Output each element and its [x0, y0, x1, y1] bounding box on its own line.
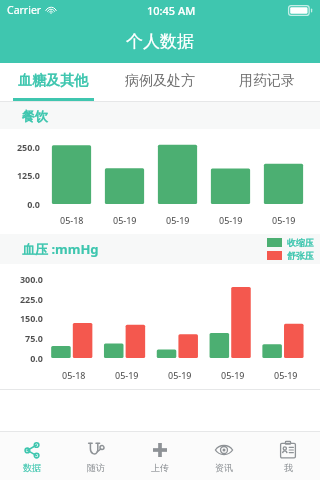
staticText: 125.0 — [16, 169, 40, 181]
staticText: 用药记录 — [239, 72, 295, 90]
staticText: 餐饮 — [22, 108, 48, 124]
staticText: 05-19 — [166, 214, 190, 226]
button[interactable]: 上传 — [128, 432, 192, 480]
staticText: 0.0 — [30, 352, 43, 364]
staticText: 05-19 — [168, 369, 192, 381]
button[interactable]: 用药记录 — [213, 63, 320, 98]
button[interactable]: 病例及处方 — [106, 63, 213, 98]
staticText: 10:45 AM — [147, 3, 196, 18]
staticText: 05-19 — [115, 369, 139, 381]
staticText: 收缩压 — [287, 237, 314, 248]
button[interactable]: 资讯 — [192, 432, 256, 480]
staticText: Carrier — [7, 3, 42, 17]
staticText: 225.0 — [19, 293, 43, 305]
staticText: 0.0 — [27, 198, 40, 210]
button[interactable]: 我 — [256, 432, 320, 480]
staticText: 我 — [284, 462, 293, 473]
staticText: 05-19 — [274, 369, 298, 381]
staticText: 个人数据 — [126, 31, 194, 52]
staticText: 数据 — [23, 462, 41, 473]
staticText: 150.0 — [19, 312, 43, 324]
button[interactable]: 数据 — [0, 432, 64, 480]
staticText: 上传 — [151, 462, 169, 473]
button[interactable]: 血糖及其他 — [0, 63, 106, 98]
staticText: 血糖及其他 — [18, 72, 88, 90]
button[interactable]: 随访 — [64, 432, 128, 480]
staticText: 75.0 — [25, 332, 43, 344]
staticText: 300.0 — [19, 273, 43, 285]
staticText: 05-19 — [113, 214, 137, 226]
staticText: 随访 — [87, 462, 105, 473]
staticText: 250.0 — [16, 141, 40, 153]
staticText: 05-19 — [272, 214, 296, 226]
staticText: 资讯 — [215, 462, 233, 473]
staticText: 病例及处方 — [125, 72, 195, 90]
staticText: 舒张压 — [287, 250, 314, 261]
staticText: 05-19 — [219, 214, 243, 226]
staticText: 05-18 — [60, 214, 84, 226]
staticText: 05-18 — [62, 369, 86, 381]
staticText: 05-19 — [221, 369, 245, 381]
staticText: 血压 :mmHg — [22, 240, 99, 258]
